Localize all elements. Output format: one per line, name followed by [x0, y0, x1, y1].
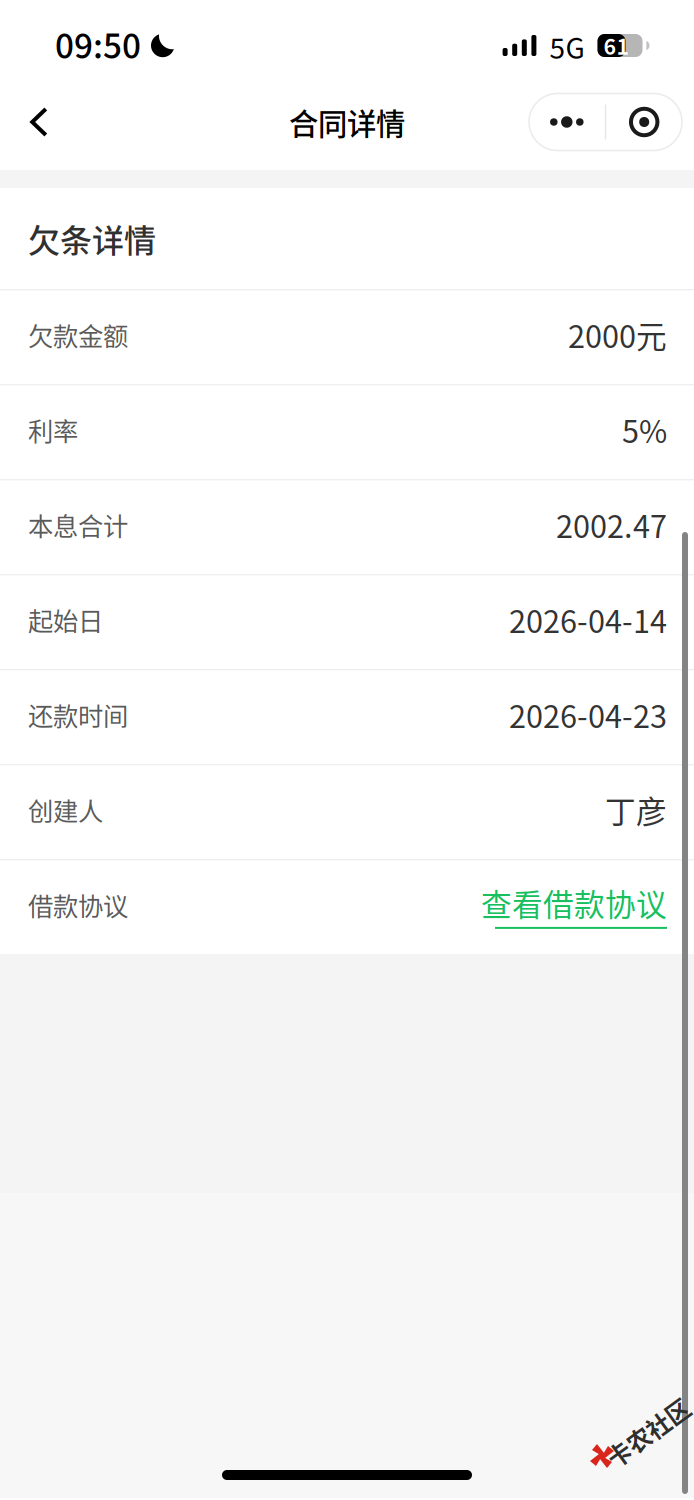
staticText: 09:50 — [55, 20, 141, 68]
staticText: 丁彦 — [605, 787, 667, 832]
staticText: 创建人 — [28, 791, 103, 828]
staticText: 欠条详情 — [28, 215, 156, 262]
button[interactable]: 还款时间 — [0, 669, 694, 764]
staticText: 2026-04-23 — [509, 692, 667, 737]
staticText: 61 — [603, 30, 629, 61]
button[interactable]: 欠款金额 — [0, 289, 694, 384]
staticText: 本息合计 — [28, 506, 128, 543]
button[interactable]: 本息合计 — [0, 479, 694, 574]
button[interactable]: 借款协议 — [0, 859, 694, 954]
button[interactable]: More options — [529, 93, 682, 150]
staticText: 2026-04-14 — [509, 597, 667, 642]
staticText: 5G — [549, 26, 584, 67]
staticText: 查看借款协议 — [481, 880, 667, 925]
staticText: 5% — [622, 407, 667, 452]
button[interactable]: 利率 — [0, 384, 694, 479]
button[interactable]: Back — [6, 91, 72, 153]
staticText: 起始日 — [28, 601, 103, 638]
staticText: 利率 — [28, 411, 78, 448]
staticText: 2000元 — [568, 312, 667, 357]
button[interactable]: 起始日 — [0, 574, 694, 669]
staticText: 2002.47 — [556, 502, 667, 547]
staticText: 借款协议 — [28, 886, 128, 923]
staticText: 卡农社区 — [600, 1415, 694, 1449]
staticText: 还款时间 — [28, 696, 128, 733]
staticText: 合同详情 — [289, 101, 405, 143]
button[interactable]: 创建人 — [0, 764, 694, 859]
staticText: 欠款金额 — [28, 316, 128, 353]
